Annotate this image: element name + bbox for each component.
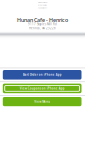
staticText: Order Online <box>38 4 47 6</box>
staticText: ChineseMenu <box>37 2 47 3</box>
staticText: 9117 Staples Mill Rd <box>28 22 57 26</box>
staticText: Start Order on iPhone App <box>23 73 62 76</box>
staticText: Hunan Cafe - Henrico <box>17 16 68 23</box>
staticText: View Coupons on iPhone App <box>20 87 65 90</box>
button[interactable]: Start Order on iPhone App <box>3 70 81 80</box>
button[interactable]: View Coupons on iPhone App <box>3 84 81 93</box>
staticText: Henrico, VA 23228 <box>29 26 56 30</box>
staticText: Food Delivery <box>37 7 47 9</box>
button[interactable]: View Menu <box>3 97 81 106</box>
staticText: View Menu <box>34 100 50 103</box>
